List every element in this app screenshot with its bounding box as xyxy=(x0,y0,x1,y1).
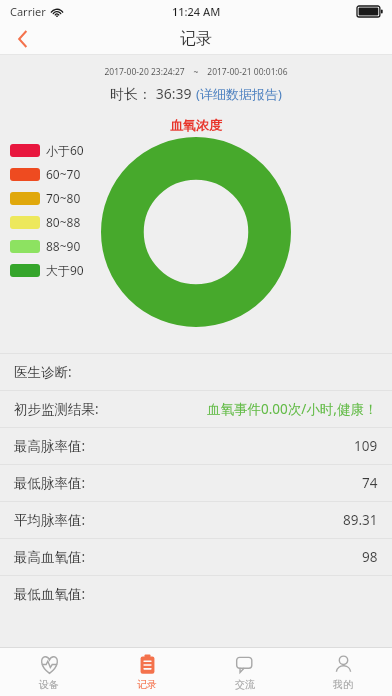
staticText: 时长： 36:39 xyxy=(110,84,196,103)
button[interactable]: 小于60 xyxy=(10,138,84,162)
staticText: 最高血氧值: xyxy=(14,548,86,566)
staticText: 11:24 AM xyxy=(172,4,221,19)
button[interactable]: 60~70 xyxy=(10,162,81,186)
staticText: 医生诊断: xyxy=(14,363,72,381)
staticText: 74 xyxy=(362,474,378,492)
staticText: 2017-00-20 23:24:27 ~ 2017-00-21 00:01:0… xyxy=(0,66,392,78)
staticText: 记录 xyxy=(137,678,157,691)
staticText: 初步监测结果: xyxy=(14,400,99,418)
staticText: 89.31 xyxy=(343,511,378,529)
staticText: 88~90 xyxy=(46,238,81,254)
button[interactable]: 最高血氧值: xyxy=(0,538,392,575)
button[interactable]: (详细数据报告) xyxy=(196,85,282,103)
staticText: 最高脉率值: xyxy=(14,437,86,455)
staticText: 98 xyxy=(362,548,378,566)
button[interactable]: Back xyxy=(0,22,46,55)
staticText: Carrier xyxy=(10,4,46,19)
staticText: 记录 xyxy=(180,29,212,49)
staticText: 80~88 xyxy=(46,214,81,230)
staticText: 血氧浓度 xyxy=(0,117,392,133)
staticText: 平均脉率值: xyxy=(14,511,86,529)
button[interactable]: 最低血氧值: xyxy=(0,575,392,612)
staticText: 大于90 xyxy=(46,262,84,278)
button[interactable]: 记录 xyxy=(98,648,196,696)
button[interactable]: 88~90 xyxy=(10,234,81,258)
button[interactable]: 大于90 xyxy=(10,258,84,282)
button[interactable]: 平均脉率值: xyxy=(0,501,392,538)
staticText: 交流 xyxy=(235,678,255,691)
button[interactable]: 交流 xyxy=(196,648,294,696)
button[interactable]: 80~88 xyxy=(10,210,81,234)
button[interactable]: 设备 xyxy=(0,648,98,696)
button[interactable]: 我的 xyxy=(294,648,392,696)
button[interactable]: 最低脉率值: xyxy=(0,464,392,501)
staticText: 最低脉率值: xyxy=(14,474,86,492)
staticText: 109 xyxy=(354,437,378,455)
button[interactable]: 初步监测结果: xyxy=(0,390,392,427)
staticText: 60~70 xyxy=(46,166,81,182)
staticText: 最低血氧值: xyxy=(14,585,86,603)
staticText: 设备 xyxy=(39,678,59,691)
staticText: (详细数据报告) xyxy=(196,85,282,103)
staticText: 小于60 xyxy=(46,142,84,158)
staticText: 我的 xyxy=(333,678,353,691)
staticText: 血氧事件0.00次/小时,健康！ xyxy=(207,400,378,418)
staticText: 70~80 xyxy=(46,190,81,206)
button[interactable]: 医生诊断: xyxy=(0,353,392,390)
button[interactable]: 最高脉率值: xyxy=(0,427,392,464)
button[interactable]: 70~80 xyxy=(10,186,81,210)
